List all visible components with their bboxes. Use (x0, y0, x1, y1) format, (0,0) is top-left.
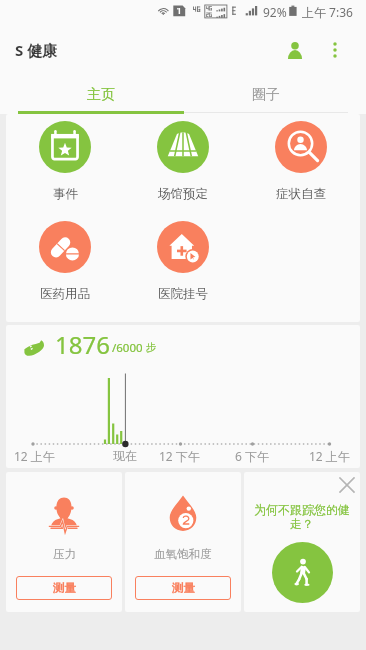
staticText: 为何不跟踪您的健走？ (251, 502, 353, 532)
staticText: 血氧饱和度 (154, 547, 212, 561)
staticText: 症状自查 (276, 186, 326, 202)
button[interactable]: 事件 (6, 121, 124, 202)
button[interactable]: 压力 (6, 472, 122, 612)
staticText: 上午 7:36 (302, 4, 353, 20)
button[interactable]: 圈子 (184, 76, 348, 114)
button[interactable]: Profile (278, 33, 312, 67)
staticText: 6 下午 (235, 448, 269, 464)
staticText: 圈子 (252, 86, 280, 104)
button[interactable]: 症状自查 (242, 121, 360, 202)
staticText: 12 上午 (309, 448, 350, 464)
staticText: 压力 (53, 547, 76, 561)
staticText: 场馆预定 (158, 186, 208, 202)
button[interactable]: 测量 (135, 576, 231, 600)
staticText: 测量 (53, 581, 76, 595)
staticText: 测量 (172, 581, 195, 595)
staticText: 步 (146, 341, 157, 354)
staticText: 1876 (55, 328, 110, 361)
staticText: 主页 (87, 86, 115, 104)
button[interactable]: 医院挂号 (124, 221, 242, 302)
staticText: 医院挂号 (158, 286, 208, 302)
staticText: 医药用品 (40, 286, 90, 302)
button[interactable]: 1876 (6, 325, 360, 468)
staticText: 事件 (53, 186, 78, 202)
button[interactable]: Start walking (272, 542, 333, 603)
button[interactable]: 场馆预定 (124, 121, 242, 202)
staticText: S 健康 (15, 40, 58, 60)
staticText: 现在 (113, 448, 137, 463)
button[interactable]: 主页 (18, 76, 184, 114)
staticText: 12 上午 (14, 448, 55, 464)
staticText: 92% (263, 4, 287, 20)
button[interactable]: 测量 (16, 576, 112, 600)
button[interactable]: 血氧饱和度 (125, 472, 241, 612)
button[interactable]: More options (320, 35, 350, 65)
button[interactable]: Close (334, 472, 360, 498)
staticText: 12 下午 (159, 448, 200, 464)
staticText: /6000 (112, 340, 143, 356)
button[interactable]: 医药用品 (6, 221, 124, 302)
